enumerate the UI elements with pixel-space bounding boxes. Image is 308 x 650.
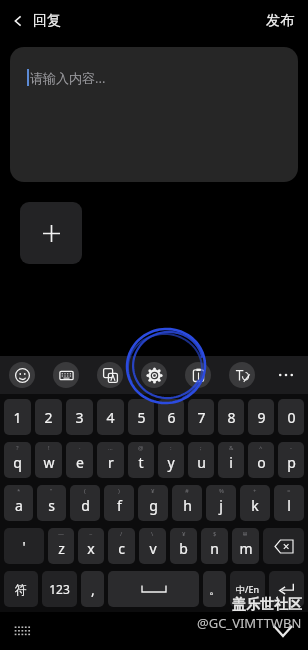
button[interactable]: 4 xyxy=(97,399,124,435)
staticText: ? xyxy=(16,444,19,452)
button[interactable]: Backspace xyxy=(263,528,304,564)
staticText: x xyxy=(87,539,95,558)
button[interactable]: 发布 xyxy=(252,6,308,36)
button[interactable]: ^ xyxy=(248,442,274,478)
staticText: z xyxy=(58,539,65,558)
button[interactable]: 5 xyxy=(128,399,154,435)
button[interactable]: 中/En xyxy=(230,571,265,607)
button[interactable]: 3 xyxy=(66,399,93,435)
staticText: ) xyxy=(118,487,120,495)
button[interactable]: More options xyxy=(264,356,308,394)
staticText: 0 xyxy=(287,408,296,427)
staticText: ₩ xyxy=(243,530,248,538)
button[interactable]: 。 xyxy=(203,571,226,607)
button[interactable]: 8 xyxy=(218,399,244,435)
button[interactable]: ¥ xyxy=(170,528,197,564)
button[interactable]: Enter xyxy=(269,571,304,607)
staticText: , xyxy=(91,580,95,599)
staticText: 回复 xyxy=(33,12,61,30)
button[interactable]: Clipboard xyxy=(176,356,220,394)
button[interactable]: Add attachment xyxy=(20,202,82,264)
staticText: d xyxy=(81,496,90,515)
staticText: v xyxy=(149,539,157,558)
button[interactable]: 123 xyxy=(42,571,77,607)
staticText: 。 xyxy=(209,582,221,597)
button[interactable]: ₩ xyxy=(232,528,259,564)
staticText: 2 xyxy=(44,408,53,427)
button[interactable]: & xyxy=(218,442,244,478)
button[interactable]: \ xyxy=(139,528,166,564)
button[interactable]: Emoji xyxy=(0,356,44,394)
button[interactable]: … xyxy=(97,442,124,478)
staticText: u xyxy=(197,453,206,472)
button[interactable]: 6 xyxy=(158,399,184,435)
staticText: ¥ xyxy=(151,487,155,495)
button[interactable]: ~ xyxy=(78,528,104,564)
button[interactable]: · xyxy=(66,442,93,478)
staticText: ~ xyxy=(89,530,93,538)
button[interactable]: = xyxy=(274,485,304,521)
staticText: b xyxy=(179,539,188,558)
button[interactable]: ¥ xyxy=(138,485,168,521)
staticText: * xyxy=(17,487,21,495)
staticText: · xyxy=(79,444,81,452)
staticText: n xyxy=(210,539,219,558)
button[interactable]: Handwriting xyxy=(220,356,264,394)
button[interactable]: / xyxy=(108,528,135,564)
button[interactable]: 7 xyxy=(188,399,214,435)
button[interactable]: Settings xyxy=(132,356,176,394)
button[interactable]: — xyxy=(48,528,74,564)
button[interactable]: , xyxy=(81,571,104,607)
button[interactable]: " xyxy=(37,485,66,521)
button[interactable]: + xyxy=(240,485,270,521)
button[interactable]: 符 xyxy=(4,571,38,607)
button[interactable]: 2 xyxy=(35,399,62,435)
button[interactable]: ? xyxy=(4,442,31,478)
staticText: / xyxy=(120,530,123,538)
button[interactable]: * xyxy=(4,485,33,521)
staticText: 123 xyxy=(49,581,70,597)
staticText: j xyxy=(219,496,223,515)
button[interactable]: ' xyxy=(4,528,44,564)
staticText: 4 xyxy=(106,408,115,427)
staticText: # xyxy=(185,487,189,495)
button[interactable]: 9 xyxy=(248,399,274,435)
staticText: ! xyxy=(48,444,50,452)
button[interactable]: Hide keyboard xyxy=(14,625,31,637)
staticText: ' xyxy=(22,537,26,556)
button[interactable]: Back xyxy=(0,6,69,36)
staticText: @ xyxy=(138,444,144,452)
staticText: @GC_VIMTTWBN xyxy=(197,614,302,632)
staticText: " xyxy=(50,487,53,495)
other: Back xyxy=(12,15,24,27)
staticText: k xyxy=(251,496,259,515)
staticText: f xyxy=(117,496,122,515)
button[interactable]: ; xyxy=(188,442,214,478)
staticText: $ xyxy=(213,530,217,538)
button[interactable]: ) xyxy=(104,485,134,521)
button[interactable]: 1 xyxy=(4,399,31,435)
button[interactable]: Keyboard layout xyxy=(44,356,88,394)
button[interactable]: Translate xyxy=(88,356,132,394)
button[interactable]: % xyxy=(206,485,236,521)
staticText: ; xyxy=(200,444,202,452)
button[interactable]: 0 xyxy=(278,399,304,435)
staticText: r xyxy=(108,453,114,472)
staticText: 5 xyxy=(137,408,146,427)
staticText: t xyxy=(138,453,144,472)
button[interactable]: Space xyxy=(108,571,199,607)
staticText: g xyxy=(149,496,158,515)
button[interactable]: ! xyxy=(35,442,62,478)
button[interactable]: - xyxy=(278,442,304,478)
button[interactable]: $ xyxy=(201,528,228,564)
staticText: 请输入内容... xyxy=(30,69,106,87)
staticText: 7 xyxy=(197,408,206,427)
button[interactable]: 请输入内容... xyxy=(10,47,298,182)
button[interactable]: ( xyxy=(70,485,100,521)
button[interactable]: : xyxy=(158,442,184,478)
button[interactable]: # xyxy=(172,485,202,521)
staticText: c xyxy=(118,539,125,558)
staticText: q xyxy=(13,453,22,472)
staticText: — xyxy=(58,530,65,538)
button[interactable]: @ xyxy=(128,442,154,478)
